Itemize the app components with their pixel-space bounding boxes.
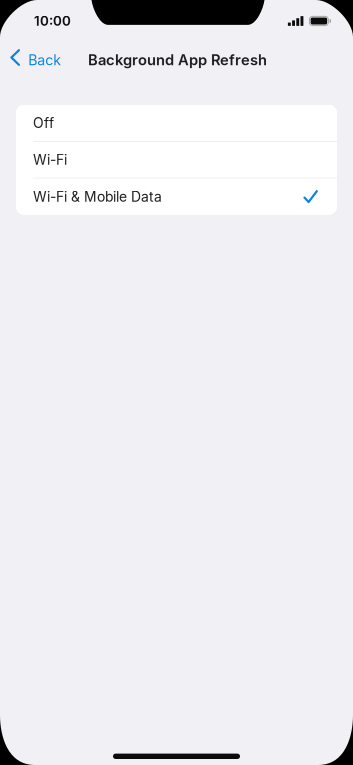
button[interactable]: Wi-Fi & Mobile Data <box>16 179 337 215</box>
staticText: Back <box>28 51 61 68</box>
button[interactable]: Off <box>16 105 337 141</box>
staticText: Wi-Fi <box>33 151 67 168</box>
button[interactable]: Wi-Fi <box>16 142 337 178</box>
staticText: Wi-Fi & Mobile Data <box>33 188 162 205</box>
button[interactable]: Back <box>0 42 71 78</box>
staticText: 10:00 <box>34 13 71 29</box>
staticText: Off <box>33 115 54 131</box>
staticText: Background App Refresh <box>88 51 267 69</box>
